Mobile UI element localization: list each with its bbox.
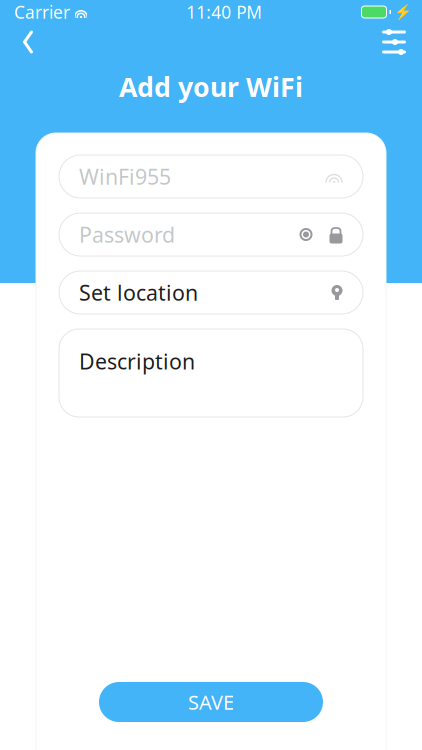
button[interactable]: WinFi955: [59, 155, 363, 198]
staticText: 11:40 PM: [186, 0, 262, 23]
staticText: ⚡: [394, 4, 412, 20]
staticText: Set location: [79, 278, 198, 307]
button[interactable]: Settings: [372, 22, 416, 62]
staticText: Description: [79, 347, 195, 375]
button[interactable]: Back: [6, 22, 50, 62]
staticText: SAVE: [188, 689, 234, 715]
button[interactable]: Description: [59, 329, 363, 417]
button[interactable]: SAVE: [99, 682, 323, 722]
staticText: Carrier: [14, 0, 70, 23]
staticText: Password: [79, 220, 175, 249]
staticText: Add your WiFi: [119, 69, 303, 104]
staticText: WinFi955: [79, 162, 171, 191]
button[interactable]: Password: [59, 213, 363, 256]
button[interactable]: Set location: [59, 271, 363, 314]
